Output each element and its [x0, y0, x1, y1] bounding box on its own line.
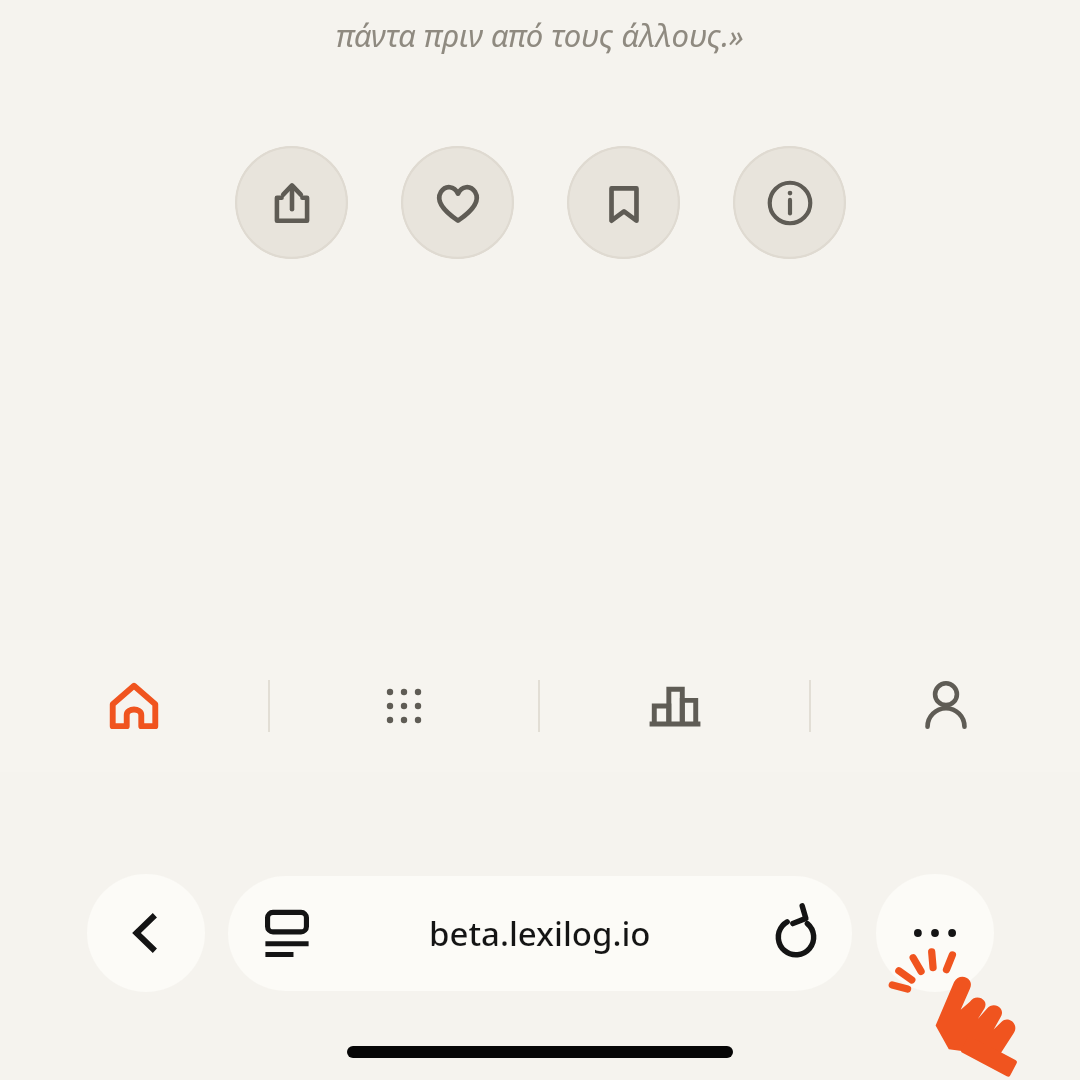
button[interactable]: Bookmark: [567, 146, 680, 259]
button[interactable]: Reload: [766, 904, 826, 964]
staticText: beta.lexilog.io: [429, 911, 651, 956]
staticText: «Ήταν οξύνους και καταλάβαινε τα πάντα π…: [305, 0, 775, 56]
button[interactable]: Info: [733, 146, 846, 259]
other: Reader view: [260, 907, 314, 961]
button[interactable]: Back: [87, 874, 205, 992]
button[interactable]: Apps: [270, 640, 538, 772]
button[interactable]: Reader view: [228, 876, 852, 991]
button[interactable]: Profile: [811, 640, 1080, 772]
button[interactable]: Favorite: [401, 146, 514, 259]
button[interactable]: Home: [0, 640, 268, 772]
button[interactable]: More options: [876, 874, 994, 992]
button[interactable]: Share: [235, 146, 348, 259]
button[interactable]: Stats: [540, 640, 809, 772]
